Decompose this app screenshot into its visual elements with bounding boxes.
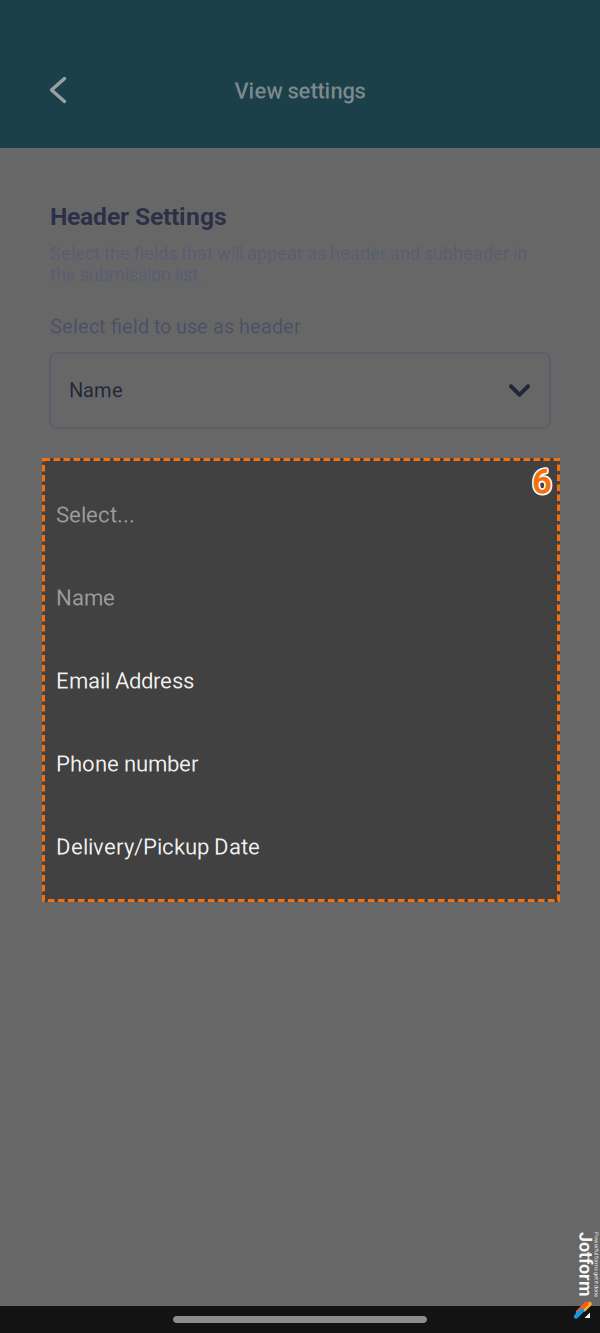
staticText: 6 bbox=[533, 460, 553, 501]
staticText: Header Settings bbox=[50, 202, 227, 231]
staticText: Name bbox=[56, 585, 115, 611]
staticText: Email Address bbox=[56, 668, 194, 694]
button[interactable]: Select... bbox=[42, 473, 560, 556]
button[interactable]: Email Address bbox=[42, 639, 560, 722]
staticText: 6 bbox=[531, 463, 551, 503]
staticText: Powerful forms get it done bbox=[556, 1254, 600, 1261]
staticText: 6 bbox=[531, 460, 551, 501]
button[interactable]: Delivery/Pickup Date bbox=[42, 805, 560, 888]
staticText: Select... bbox=[56, 502, 135, 528]
staticText: 6 bbox=[532, 463, 552, 504]
button[interactable]: Phone number bbox=[42, 722, 560, 805]
button[interactable]: Name bbox=[50, 353, 550, 428]
staticText: Select the fields that will appear as he… bbox=[50, 243, 527, 285]
staticText: 6 bbox=[532, 462, 552, 502]
staticText: 6 bbox=[533, 463, 553, 503]
staticText: Select field to use as header bbox=[50, 315, 301, 338]
staticText: Delivery/Pickup Date bbox=[56, 834, 260, 860]
staticText: Name bbox=[69, 379, 123, 402]
staticText: 6 bbox=[530, 462, 550, 502]
staticText: 6 bbox=[532, 460, 552, 501]
staticText: View settings bbox=[234, 78, 365, 104]
button[interactable]: Name bbox=[42, 556, 560, 639]
staticText: Phone number bbox=[56, 751, 199, 777]
staticText: 6 bbox=[534, 462, 554, 502]
button[interactable]: Back bbox=[28, 60, 88, 120]
staticText: Jotform bbox=[556, 1258, 600, 1279]
